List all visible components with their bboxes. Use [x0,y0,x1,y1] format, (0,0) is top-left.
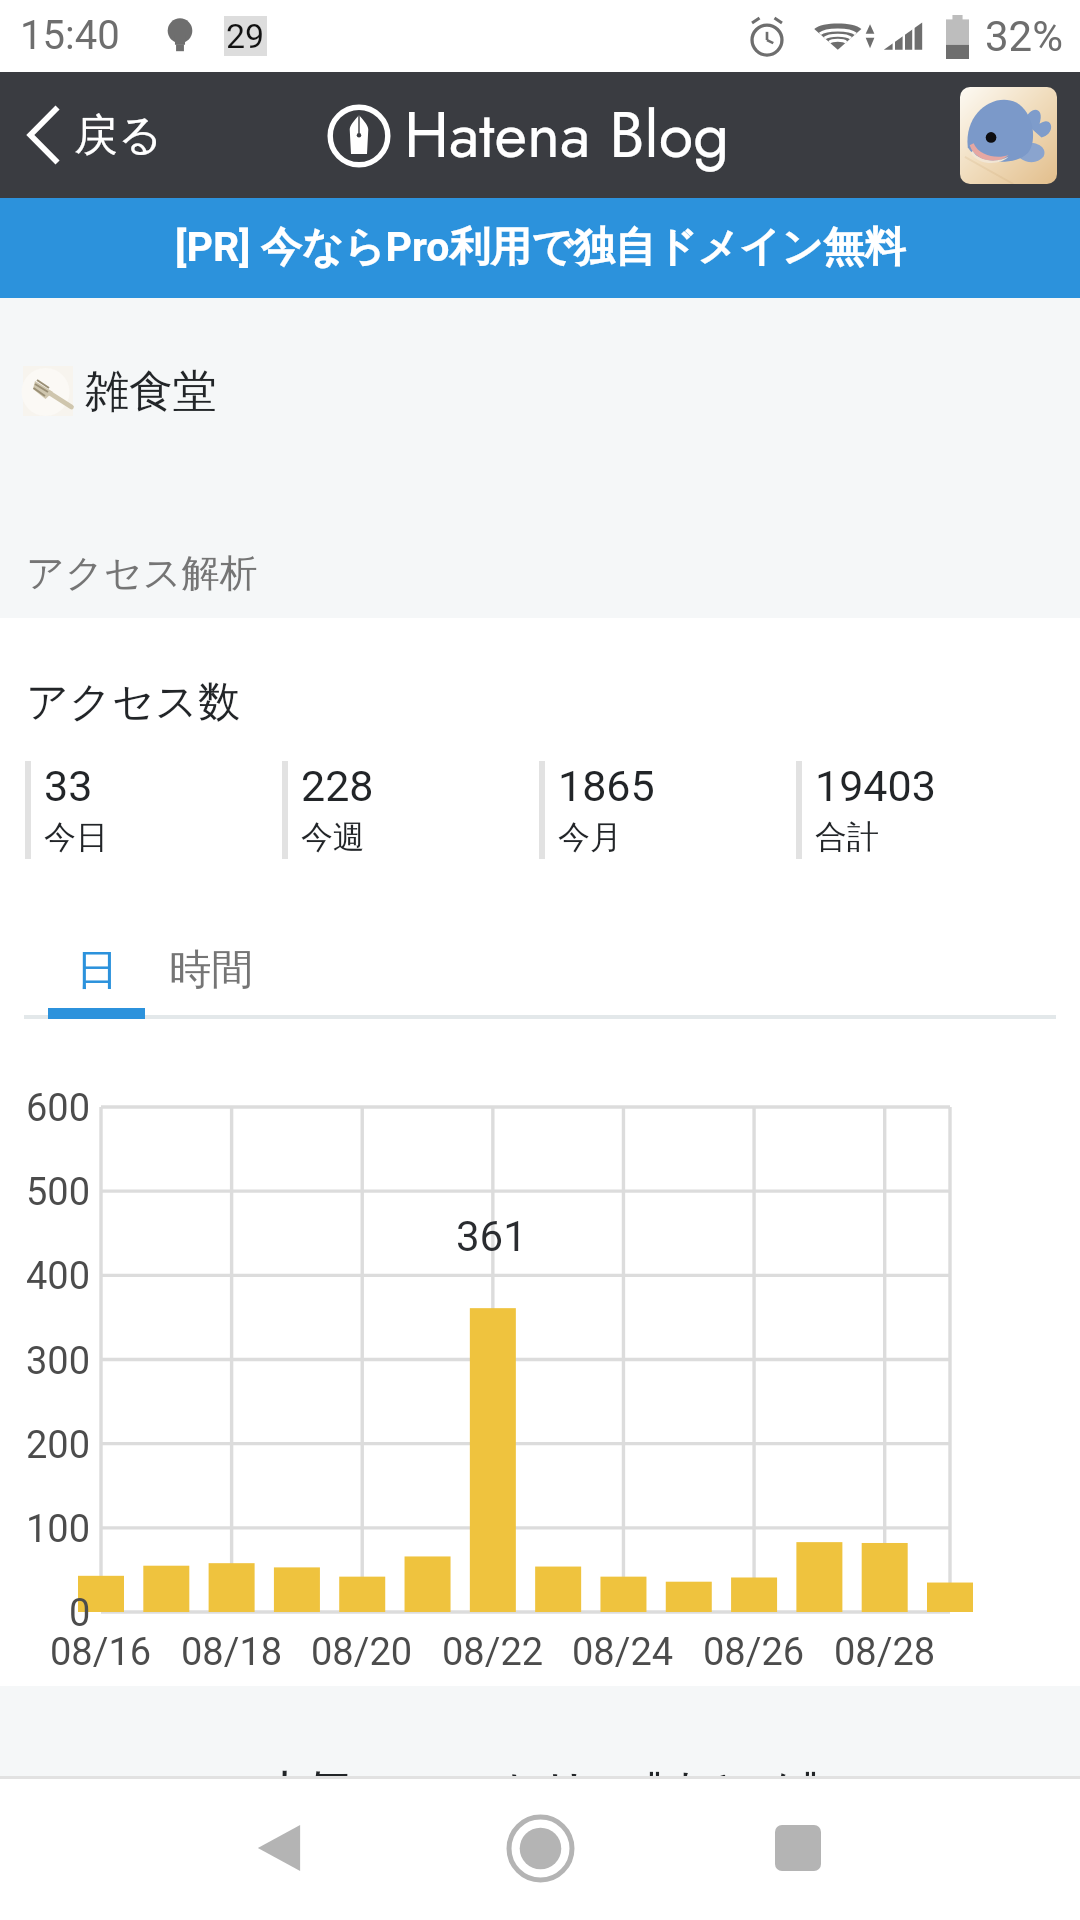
staticText: 人気のエントリー "まとめ" [262,1763,818,1776]
button[interactable]: Back [224,1793,334,1903]
staticText: 08/24 [572,1630,674,1675]
button[interactable]: Home [485,1793,595,1903]
staticText: 合計 [815,817,879,857]
staticText: 500 [26,1170,91,1215]
staticText: 08/16 [50,1630,152,1675]
button[interactable]: [PR] 今ならPro利用で独自ドメイン無料 [0,198,1080,298]
staticText: 1865 [558,761,655,811]
staticText: 19403 [815,761,936,811]
staticText: 32% [985,12,1063,61]
staticText: 0 [69,1591,91,1636]
button[interactable]: 1865 [539,761,771,859]
staticText: 228 [301,761,374,811]
button[interactable]: 日 [0,899,194,1017]
button[interactable]: Profile [960,87,1057,184]
staticText: アクセス数 [26,676,240,729]
staticText: 雑食堂 [85,364,217,419]
button[interactable]: 戻る [0,72,186,198]
button[interactable]: 228 [282,761,514,859]
staticText: 戻る [74,108,164,163]
button[interactable]: 33 [25,761,257,859]
staticText: 08/20 [311,1630,413,1675]
staticText: 08/28 [834,1630,936,1675]
staticText: 今月 [558,817,622,857]
staticText: 今週 [301,817,365,857]
staticText: 時間 [169,944,253,997]
staticText: 08/18 [181,1630,283,1675]
button[interactable]: 19403 [796,761,1028,859]
staticText: 600 [26,1086,91,1131]
staticText: [PR] 今ならPro利用で独自ドメイン無料 [175,222,906,274]
button[interactable]: Recents [743,1793,853,1903]
staticText: 08/22 [442,1630,544,1675]
staticText: 361 [456,1212,527,1261]
staticText: 29 [226,16,265,56]
staticText: 400 [26,1254,91,1299]
button[interactable]: 雑食堂 [0,298,1080,484]
staticText: 日 [76,944,118,997]
staticText: 200 [26,1423,91,1468]
staticText: 33 [44,761,93,811]
staticText: 15:40 [20,12,120,59]
staticText: 今日 [44,817,108,857]
staticText: 300 [26,1339,91,1384]
button[interactable]: アクセス解析 [0,484,1080,618]
staticText: Hatena Blog [404,90,730,181]
staticText: 08/26 [703,1630,805,1675]
staticText: 100 [26,1507,91,1552]
button[interactable]: 時間 [194,899,420,1017]
staticText: アクセス解析 [26,549,258,597]
